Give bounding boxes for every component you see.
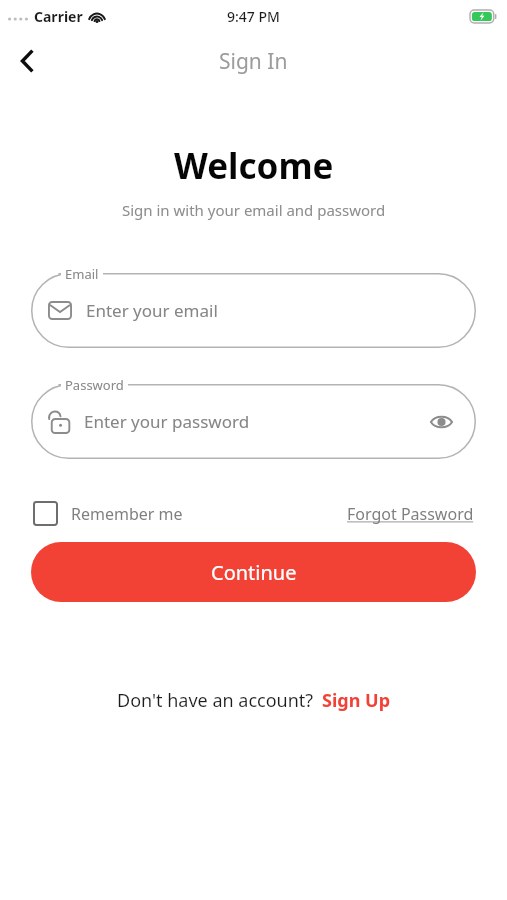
button[interactable]: Back (6, 39, 50, 83)
button[interactable]: Enter your email (31, 273, 476, 348)
staticText: Don't have an account? (117, 688, 314, 713)
staticText: Enter your email (86, 299, 218, 322)
staticText: Welcome (174, 142, 334, 190)
staticText: Password (65, 376, 124, 394)
staticText: 9:47 PM (227, 7, 280, 26)
button[interactable]: Remember me (33, 501, 183, 526)
button[interactable]: Forgot Password (347, 503, 474, 525)
button[interactable]: Continue (31, 542, 476, 602)
staticText: Continue (211, 559, 297, 586)
staticText: Email (65, 265, 99, 283)
staticText: Remember me (71, 503, 183, 525)
staticText: Sign In (219, 47, 288, 76)
button[interactable]: Enter your password (31, 384, 476, 459)
button[interactable]: Show password (426, 407, 456, 437)
button[interactable]: Sign Up (322, 688, 391, 713)
staticText: Sign in with your email and password (122, 200, 386, 220)
staticText: Carrier (34, 7, 83, 26)
staticText: Enter your password (84, 410, 250, 433)
